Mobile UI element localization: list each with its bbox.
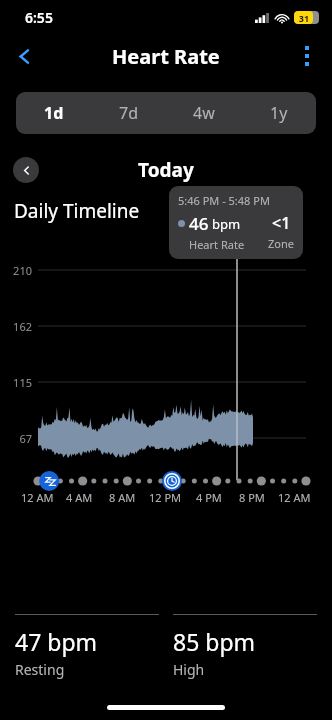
button[interactable]: 47 bpm	[15, 614, 159, 679]
staticText: 8 AM	[109, 490, 136, 505]
staticText: bpm	[212, 215, 241, 233]
staticText: 85 bpm	[173, 626, 256, 657]
button[interactable]: 5:46 PM - 5:48 PM	[169, 186, 303, 259]
staticText: 6:55	[25, 8, 53, 27]
staticText: 1d	[44, 102, 64, 124]
button[interactable]: 4w	[166, 92, 241, 134]
staticText: Heart Rate	[112, 43, 220, 70]
staticText: 12 AM	[278, 490, 311, 505]
staticText: 5:46 PM - 5:48 PM	[178, 193, 270, 208]
staticText: Today	[138, 157, 194, 183]
staticText: 4w	[193, 102, 215, 124]
staticText: Zone	[268, 236, 294, 251]
button[interactable]: 1y	[241, 92, 316, 134]
staticText: 210	[0, 263, 32, 278]
staticText: 7d	[119, 102, 138, 124]
button[interactable]: 7d	[91, 92, 166, 134]
staticText: 47 bpm	[15, 626, 98, 657]
staticText: 46	[189, 212, 209, 235]
staticText: 1y	[270, 102, 288, 124]
button[interactable]: 1d	[16, 92, 91, 134]
staticText: 4 PM	[196, 490, 222, 505]
button[interactable]: More options	[287, 36, 327, 76]
staticText: Resting	[15, 660, 65, 679]
staticText: Daily Timeline	[14, 198, 140, 224]
staticText: 67	[0, 431, 32, 446]
staticText: High	[173, 660, 205, 679]
button[interactable]: 85 bpm	[173, 614, 317, 679]
staticText: 12 PM	[149, 490, 182, 505]
staticText: Heart Rate	[189, 237, 245, 252]
staticText: 8 PM	[239, 490, 265, 505]
staticText: 162	[0, 319, 32, 334]
staticText: 31	[294, 12, 314, 24]
staticText: 4 AM	[66, 490, 93, 505]
button[interactable]: Previous day	[13, 157, 39, 183]
button[interactable]: Back	[4, 36, 44, 76]
staticText: <1	[272, 212, 291, 234]
staticText: 115	[0, 375, 32, 390]
staticText: 12 AM	[21, 490, 54, 505]
